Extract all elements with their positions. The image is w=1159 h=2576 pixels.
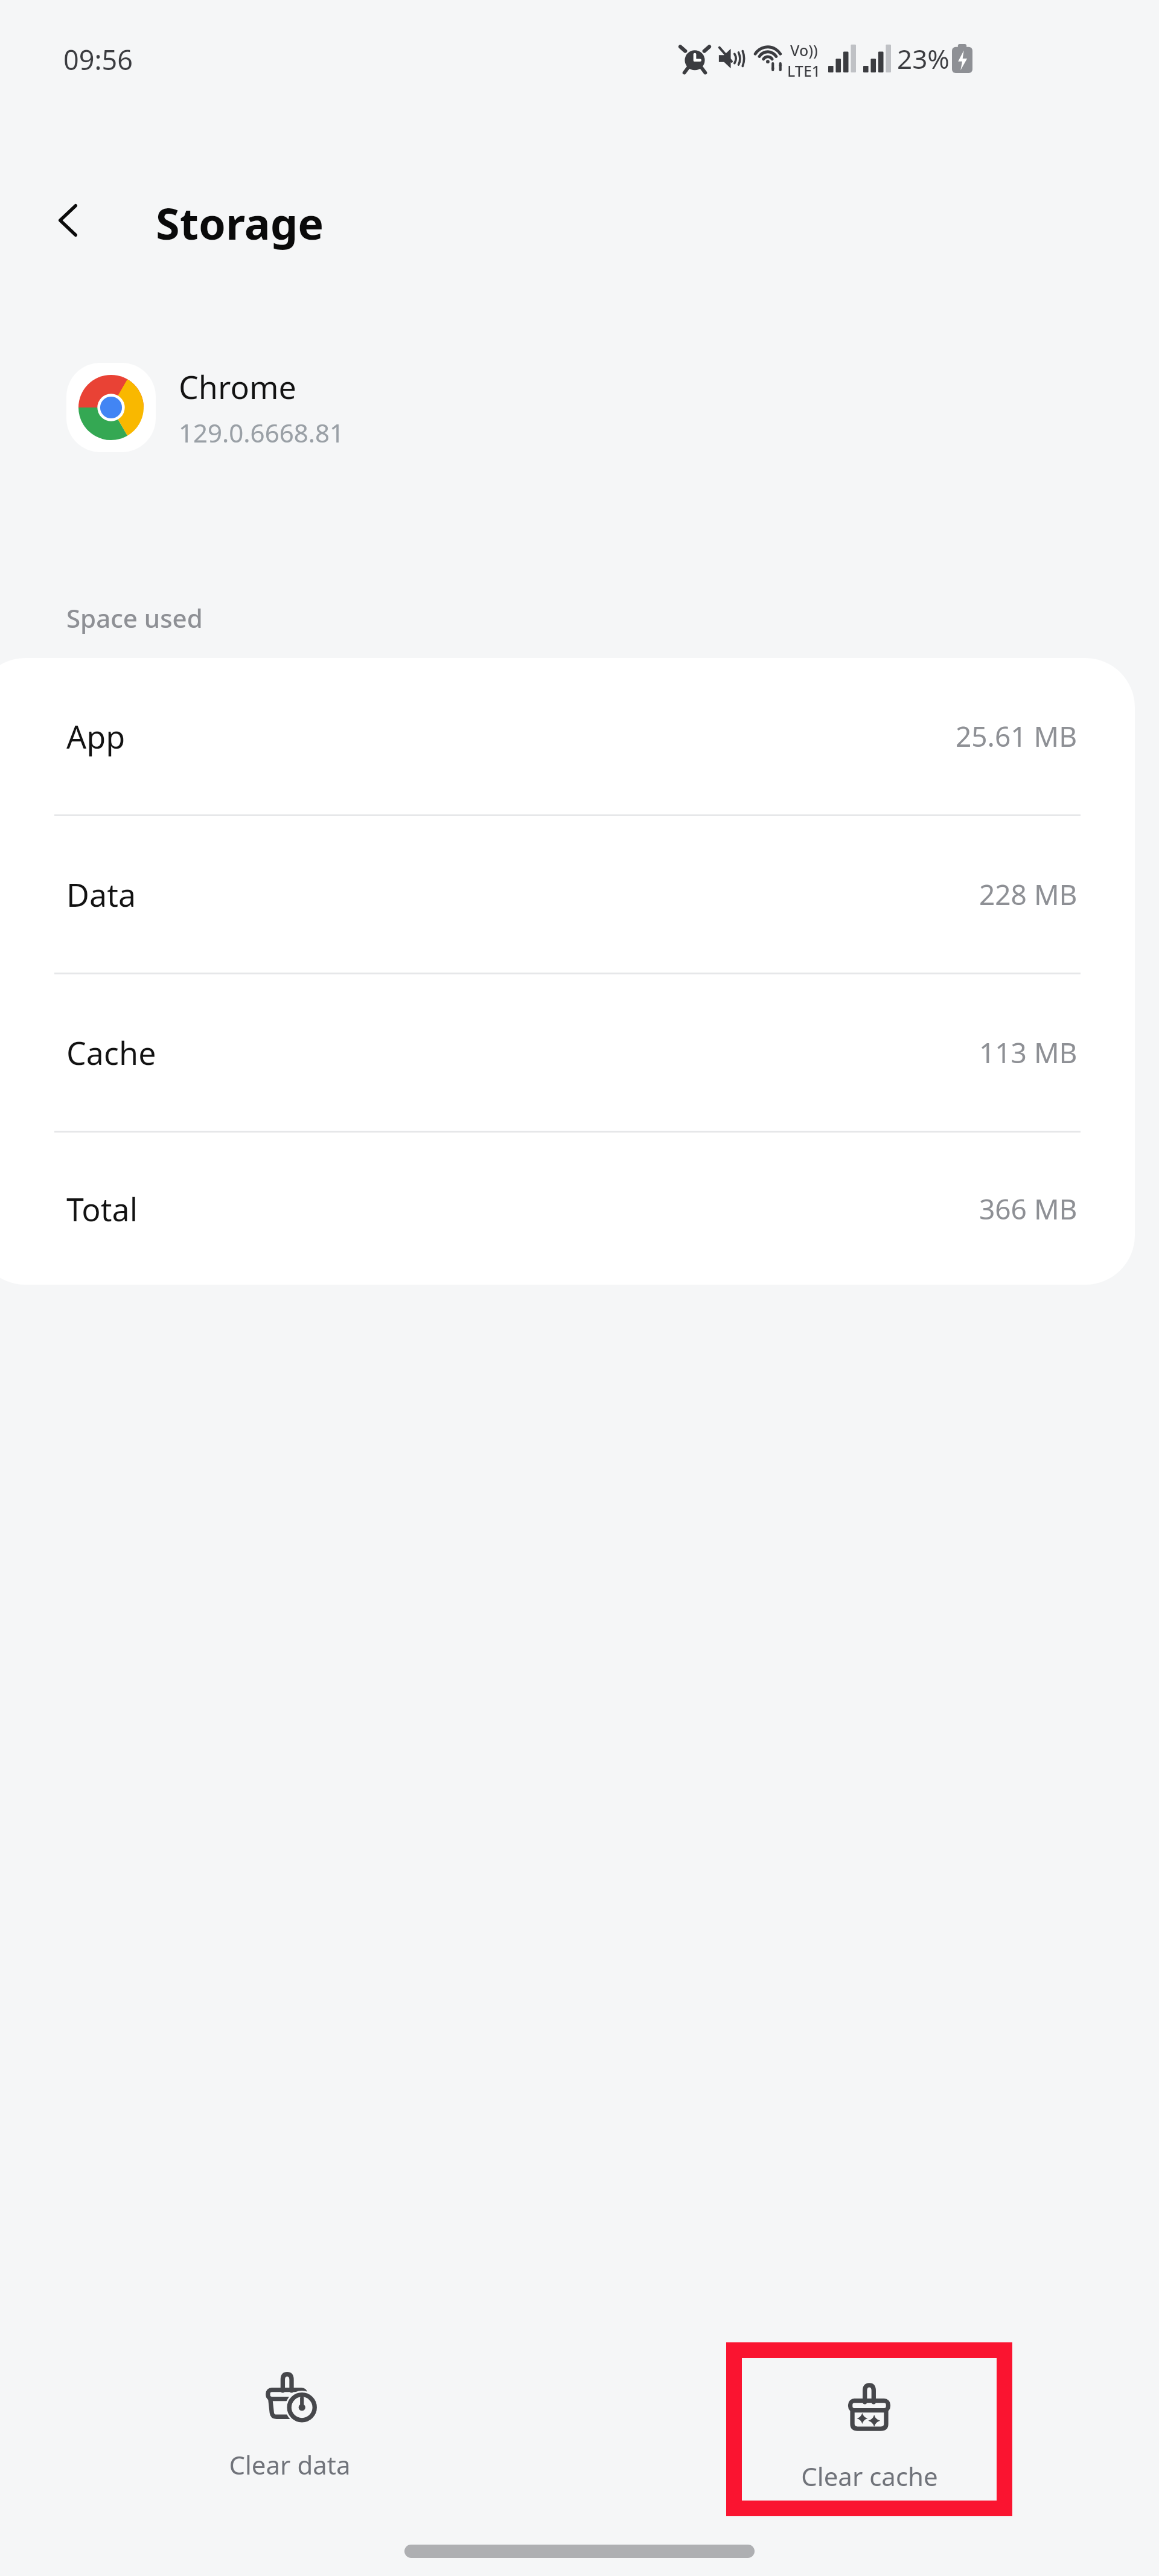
button[interactable]: Back — [36, 187, 103, 254]
button[interactable]: Clear data — [160, 2342, 420, 2493]
staticText: Cache — [66, 1031, 156, 1074]
button[interactable]: App — [0, 658, 1135, 814]
button[interactable]: Total — [0, 1133, 1135, 1285]
staticText: App — [66, 715, 126, 758]
staticText: LTE1 — [787, 60, 821, 77]
staticText: 23% — [897, 40, 950, 77]
staticText: Storage — [156, 193, 324, 252]
staticText: Data — [66, 873, 136, 916]
staticText: 129.0.6668.81 — [179, 415, 345, 450]
button[interactable]: Chrome — [0, 350, 1159, 465]
staticText: 25.61 MB — [956, 717, 1078, 755]
button[interactable]: Cache — [0, 974, 1135, 1131]
staticText: Vo)) — [790, 40, 818, 60]
button[interactable]: Clear cache — [739, 2354, 999, 2505]
staticText: 228 MB — [979, 875, 1078, 913]
staticText: 113 MB — [979, 1034, 1078, 1072]
button[interactable]: Data — [0, 816, 1135, 973]
staticText: Space used — [66, 601, 203, 635]
staticText: Chrome — [179, 365, 296, 408]
staticText: Total — [66, 1187, 138, 1230]
staticText: 366 MB — [979, 1190, 1078, 1228]
staticText: 09:56 — [63, 41, 133, 78]
staticText: Clear data — [229, 2447, 351, 2482]
staticText: Clear cache — [801, 2459, 938, 2493]
